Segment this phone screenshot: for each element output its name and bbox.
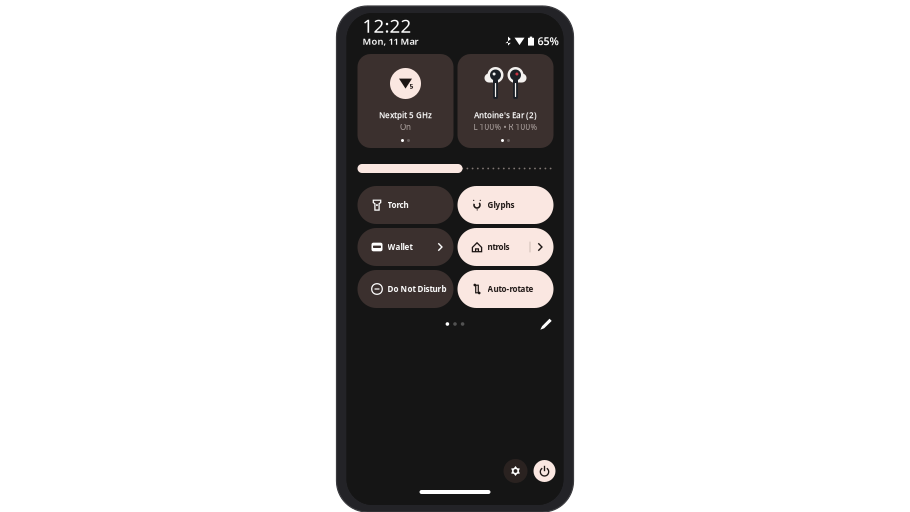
staticText: Nextpit 5 GHz [379, 110, 432, 120]
staticText: On [400, 121, 411, 132]
staticText: ntrols [487, 242, 509, 252]
staticText: 5 [409, 82, 413, 91]
button[interactable]: 5 [357, 54, 453, 148]
button[interactable]: Do Not Disturb [357, 270, 453, 308]
staticText: Glyphs [487, 200, 514, 210]
staticText: Torch [387, 200, 408, 210]
button[interactable]: ntrols [457, 228, 553, 266]
staticText: Do Not Disturb [387, 284, 446, 294]
button[interactable]: Power [533, 460, 555, 482]
staticText: L 100% • R 100% [473, 121, 537, 132]
staticText: Wallet [387, 242, 412, 252]
button[interactable]: Edit tiles [534, 312, 557, 335]
button[interactable]: Glyphs [457, 186, 553, 224]
staticText: 12:22 [362, 13, 411, 38]
staticText: Antoine's Ear (2) [474, 110, 537, 120]
button[interactable]: Settings [503, 459, 527, 483]
staticText: 65% [537, 34, 558, 48]
button[interactable]: Wallet [357, 228, 453, 266]
staticText: Mon, 11 Mar [362, 35, 418, 47]
button[interactable]: Torch [357, 186, 453, 224]
button[interactable]: Antoine's Ear (2) [457, 54, 553, 148]
button[interactable]: Auto-rotate [457, 270, 553, 308]
staticText: Auto-rotate [487, 284, 533, 294]
